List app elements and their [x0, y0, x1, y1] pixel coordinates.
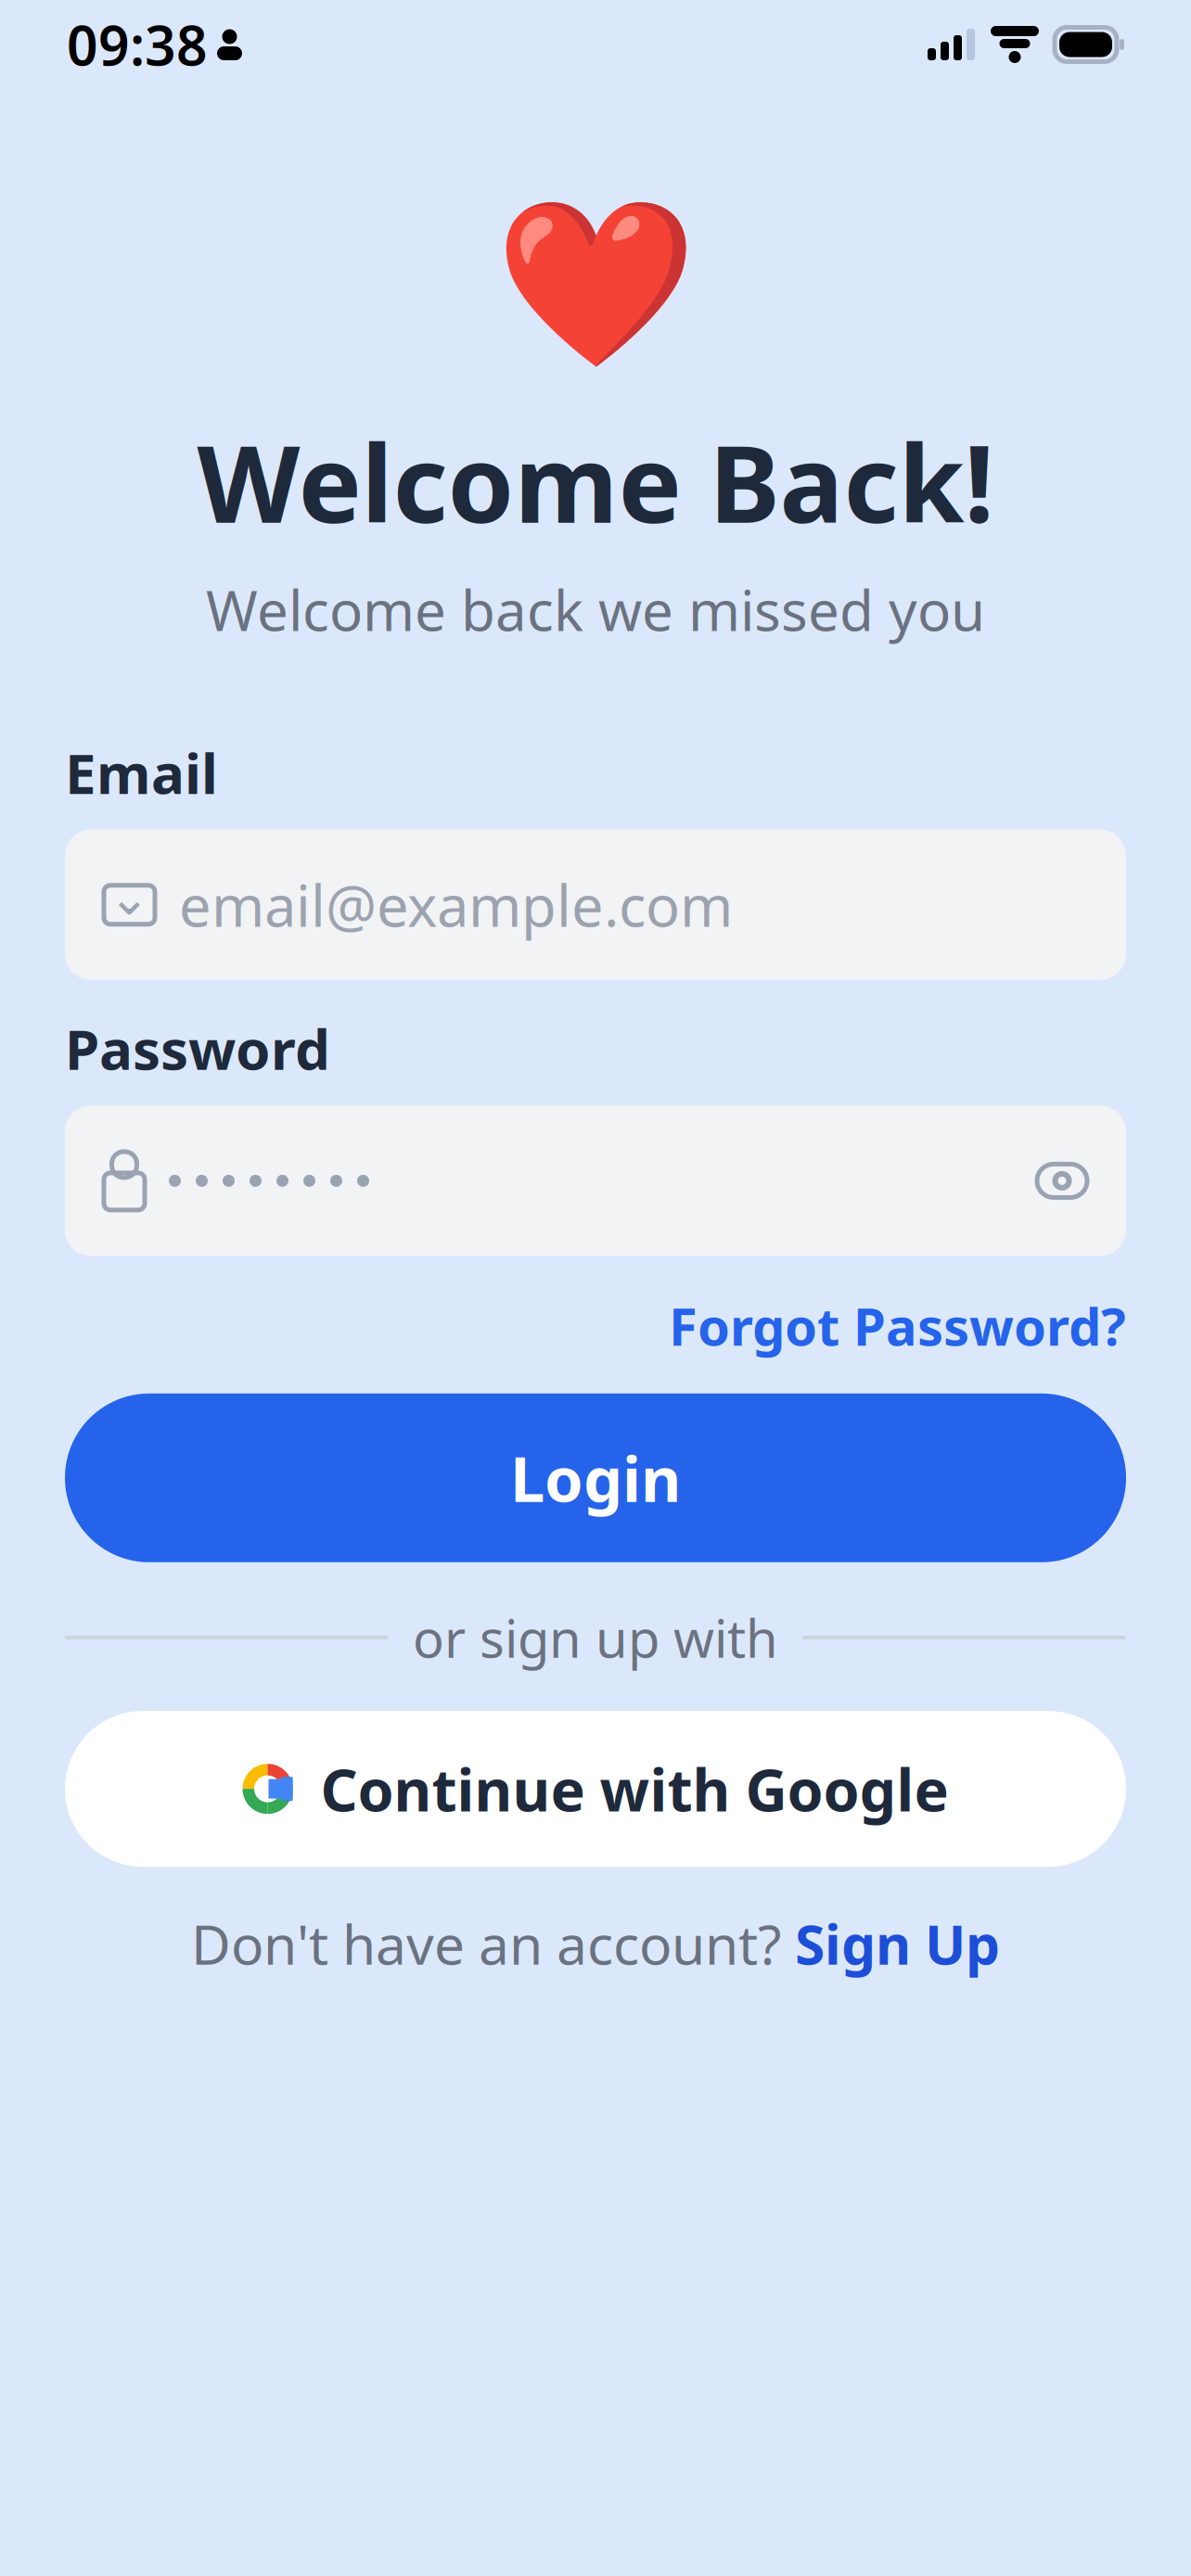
- staticText: ❤️: [494, 191, 697, 377]
- staticText: Login: [510, 1437, 681, 1519]
- button[interactable]: Login: [65, 1394, 1126, 1562]
- staticText: 09:38: [67, 8, 208, 81]
- button[interactable]: Show password: [1037, 1164, 1087, 1197]
- staticText: Password: [65, 1011, 330, 1085]
- staticText: email@example.com: [179, 867, 733, 942]
- staticText: ⌄: [109, 869, 150, 925]
- button[interactable]: Continue with Google: [65, 1711, 1126, 1867]
- staticText: Welcome Back!: [197, 411, 994, 552]
- staticText: Sign Up: [795, 1908, 1000, 1980]
- staticText: Continue with Google: [320, 1750, 948, 1827]
- staticText: Email: [65, 735, 218, 809]
- button[interactable]: Forgot Password?: [669, 1291, 1126, 1360]
- staticText: Forgot Password?: [669, 1291, 1126, 1360]
- staticText: or sign up with: [413, 1603, 778, 1672]
- button[interactable]: Sign Up: [795, 1908, 1000, 1980]
- button[interactable]: ⌄: [65, 830, 1126, 980]
- staticText: Welcome back we missed you: [206, 573, 985, 646]
- staticText: Don't have an account?: [191, 1908, 795, 1980]
- button[interactable]: [65, 1106, 1126, 1256]
